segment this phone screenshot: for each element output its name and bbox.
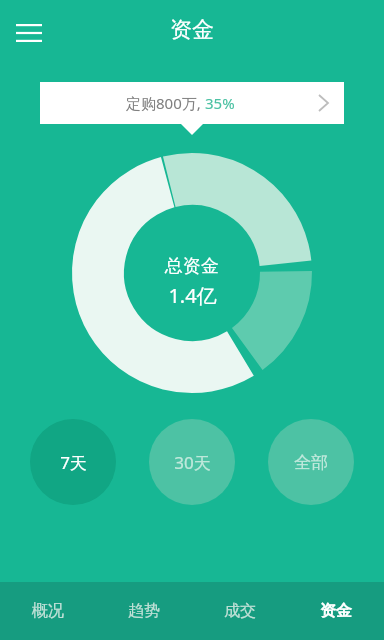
button[interactable]: 定购800万, [40, 82, 344, 124]
staticText: 概况 [32, 601, 64, 621]
staticText: 定购800万, [126, 93, 205, 113]
staticText: 30天 [174, 451, 211, 474]
button[interactable]: 全部 [268, 419, 354, 505]
staticText: 趋势 [128, 601, 160, 621]
staticText: 全部 [294, 452, 328, 473]
button[interactable]: 概况 [0, 582, 96, 640]
staticText: 成交 [224, 601, 256, 621]
staticText: 35% [205, 93, 235, 113]
staticText: 总资金 [165, 255, 219, 278]
button[interactable]: 30天 [149, 419, 235, 505]
staticText: 1.4亿 [168, 282, 217, 309]
button[interactable]: 成交 [192, 582, 288, 640]
staticText: 资金 [170, 16, 214, 44]
button[interactable]: 趋势 [96, 582, 192, 640]
staticText: 7天 [60, 451, 87, 474]
staticText: 资金 [320, 601, 352, 621]
button[interactable]: Menu [8, 12, 50, 54]
button[interactable]: 资金 [288, 582, 384, 640]
button[interactable]: 7天 [30, 419, 116, 505]
